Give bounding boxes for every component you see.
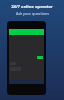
staticText: Ask your questions — [16, 11, 49, 16]
staticText: 24/7 online operator — [11, 4, 53, 10]
